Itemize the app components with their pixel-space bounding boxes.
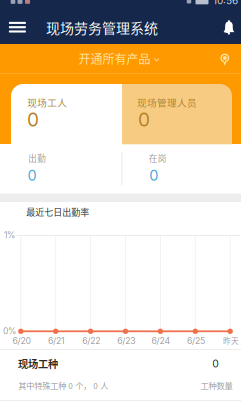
staticText: 开通所有产品	[78, 50, 150, 67]
button[interactable]: Menu	[1, 11, 34, 43]
staticText: 6/25	[187, 335, 205, 346]
button[interactable]: Notifications	[215, 11, 241, 43]
staticText: 现场工种	[18, 356, 58, 371]
staticText: 6/20	[12, 335, 30, 346]
staticText: 6/24	[152, 335, 171, 346]
button[interactable]: Location	[212, 45, 238, 74]
staticText: 工种数量	[200, 379, 232, 391]
staticText: 现场工人	[27, 95, 67, 109]
staticText: 0	[27, 167, 36, 184]
staticText: 6/22	[82, 335, 100, 346]
staticText: 0	[138, 108, 150, 131]
staticText: 昨天	[223, 335, 239, 346]
staticText: 0	[27, 108, 39, 131]
staticText: 在岗	[149, 152, 167, 164]
staticText: 10:56	[213, 0, 238, 7]
staticText: 0	[212, 357, 219, 370]
staticText: 出勤	[28, 152, 46, 164]
button[interactable]: 开通所有产品	[71, 44, 167, 73]
staticText: 6/23	[117, 335, 135, 346]
staticText: 现场劳务管理系统	[46, 17, 158, 37]
staticText: 0%	[3, 326, 16, 336]
staticText: 6/21	[48, 335, 65, 346]
staticText: 最近七日出勤率	[26, 205, 89, 218]
button[interactable]: 现场工种	[0, 350, 241, 400]
staticText: 其中特殊工种 0 个， 0 人	[18, 379, 108, 391]
staticText: 现场管理人员	[137, 95, 197, 109]
staticText: 1%	[4, 230, 15, 240]
staticText: 0	[149, 167, 158, 184]
